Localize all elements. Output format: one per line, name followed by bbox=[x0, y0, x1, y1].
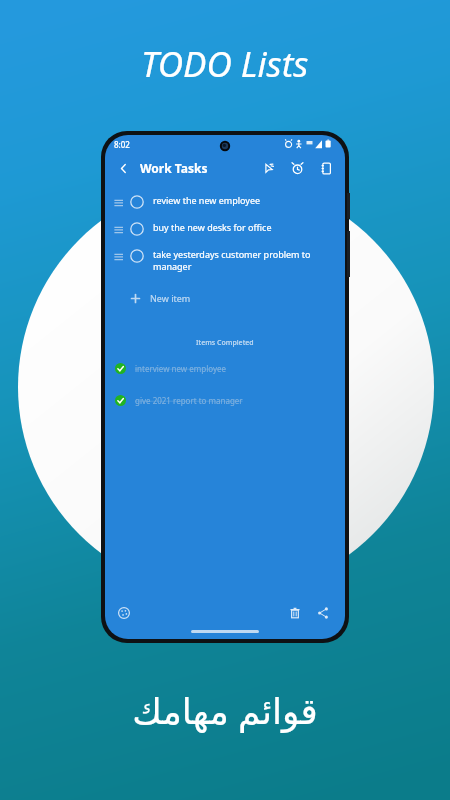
button[interactable]: review the new employee bbox=[105, 190, 345, 217]
staticText: New item bbox=[150, 292, 191, 304]
button[interactable]: Set reminder bbox=[287, 158, 307, 178]
button[interactable]: give 2021 report to manager bbox=[105, 391, 345, 409]
button[interactable]: take yesterdays customer problem to mana… bbox=[105, 244, 345, 277]
button[interactable]: Delete bbox=[285, 603, 305, 623]
button[interactable]: Theme colour bbox=[115, 604, 133, 622]
staticText: give 2021 report to manager bbox=[135, 395, 243, 406]
staticText: TODO Lists bbox=[141, 40, 309, 88]
button[interactable]: Select items bbox=[258, 158, 278, 178]
staticText: Items Completed bbox=[196, 338, 254, 348]
staticText: take yesterdays customer problem to mana… bbox=[153, 248, 329, 273]
staticText: Work Tasks bbox=[140, 160, 208, 176]
button[interactable]: New item bbox=[105, 286, 345, 310]
staticText: buy the new desks for office bbox=[153, 221, 272, 233]
button[interactable]: Share bbox=[313, 603, 333, 623]
button[interactable]: Notes bbox=[316, 158, 336, 178]
button[interactable]: Back bbox=[112, 157, 134, 179]
button[interactable]: buy the new desks for office bbox=[105, 217, 345, 244]
staticText: review the new employee bbox=[153, 194, 261, 206]
button[interactable]: interview new employee bbox=[105, 359, 345, 377]
staticText: 8:02 bbox=[114, 139, 130, 150]
staticText: interview new employee bbox=[135, 363, 226, 374]
staticText: قوائم مهامك bbox=[132, 686, 318, 735]
